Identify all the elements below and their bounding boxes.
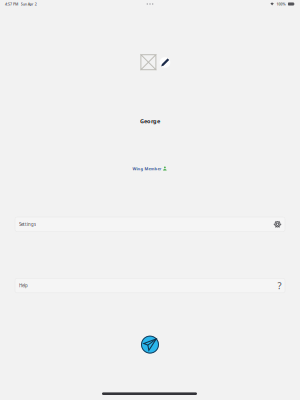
staticText: 4:57 PM	[5, 1, 18, 6]
staticText: 100%	[276, 1, 285, 6]
staticText: Wing Member	[132, 166, 161, 171]
staticText: ?	[277, 279, 281, 292]
button[interactable]: Wing Member	[132, 166, 167, 172]
button[interactable]: Settings	[15, 217, 285, 232]
button[interactable]: Help	[15, 278, 285, 293]
image	[140, 54, 156, 70]
staticText: Help	[19, 283, 28, 289]
staticText: George	[140, 117, 160, 125]
staticText: Settings	[19, 221, 36, 227]
staticText: Sun Apr 2	[21, 1, 37, 6]
button[interactable]: Send	[140, 335, 160, 355]
button[interactable]: Edit profile photo	[138, 47, 175, 77]
